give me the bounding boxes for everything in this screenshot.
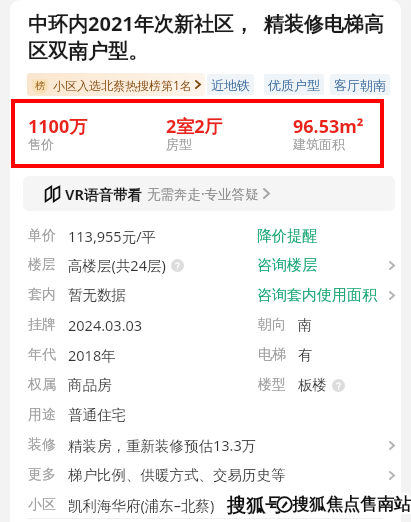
staticText: 电梯 [258,346,286,364]
staticText: 高楼层(共24层) [68,255,166,275]
staticText: 小区入选北蔡热搜榜第1名 [53,77,192,93]
staticText: 楼型 [258,376,286,394]
button[interactable]: 更多 [0,460,411,490]
staticText: 96.53m² [293,114,364,139]
staticText: 咨询楼层 [257,256,317,275]
staticText: 权属 [28,376,56,394]
staticText: 1100万 [28,114,88,139]
staticText: 朝向 [258,316,286,334]
button[interactable]: 客厅朝南 [330,74,390,95]
button[interactable]: 近地铁 [207,74,254,95]
button[interactable]: 套内 [0,280,411,310]
staticText: 搜狐焦点售南站 [292,496,411,517]
button[interactable]: 榜 [27,73,205,96]
staticText: 搜狐号 [225,492,282,516]
staticText: 搜狐号 [229,496,286,520]
staticText: 113,955元/平 [68,226,157,246]
staticText: 单价 [28,227,56,245]
staticText: 挂牌 [28,316,56,334]
button[interactable]: 挂牌 [0,310,411,340]
staticText: 搜狐焦点售南站 [292,492,411,513]
staticText: 更多 [28,466,56,484]
staticText: 搜狐焦点售南站 [294,492,411,513]
staticText: 2室2厅 [166,114,223,139]
staticText: 梯户比例、供暖方式、交易历史等 [68,466,286,484]
staticText: 无需奔走·专业答疑 [147,185,259,203]
staticText: 2018年 [68,345,116,365]
staticText: 搜狐号 [225,496,282,520]
staticText: 近地铁 [211,77,250,93]
staticText: 搜狐号 [225,494,282,518]
staticText: 咨询套内使用面积 [257,286,377,305]
staticText: 精装房，重新装修预估13.3万 [68,435,257,455]
staticText: 商品房 [68,376,112,394]
staticText: 房型 [166,136,192,152]
staticText: 搜狐焦点售南站 [290,496,409,517]
button[interactable]: 单价 [0,221,411,251]
button[interactable]: 小区 [0,490,411,520]
button[interactable]: 年代 [0,340,411,370]
staticText: 搜狐号 [229,492,286,516]
button[interactable]: 用途 [0,400,411,430]
staticText: 用途 [28,406,56,424]
staticText: 中环内2021年次新社区， 精装修电梯高区双南户型。 [28,10,394,64]
staticText: 搜狐号 [227,494,284,518]
staticText: 有 [298,346,313,364]
button[interactable]: 优质户型 [264,74,324,95]
staticText: 客厅朝南 [334,77,386,93]
staticText: 搜狐号 [227,492,284,516]
button[interactable]: VR语音带看 [23,176,395,211]
button[interactable]: 装修 [0,430,411,460]
staticText: 优质户型 [268,77,320,93]
staticText: 搜狐焦点售南站 [294,496,411,517]
staticText: 降价提醒 [257,227,317,246]
staticText: 板楼 [298,376,327,394]
staticText: 搜狐号 [227,496,284,520]
staticText: 搜狐号 [229,494,286,518]
staticText: 装修 [28,436,56,454]
staticText: 2024.03.03 [68,315,143,335]
staticText: 搜狐焦点售南站 [294,494,411,515]
staticText: 搜狐焦点售南站 [290,492,409,513]
staticText: 售价 [28,136,54,152]
staticText: 南 [298,316,313,334]
button[interactable]: 权属 [0,370,411,400]
staticText: 暂无数据 [68,286,126,304]
button[interactable]: 楼层 [0,250,411,280]
staticText: 年代 [28,346,56,364]
staticText: 楼层 [28,256,56,274]
staticText: 榜 [35,79,45,92]
staticText: 搜狐焦点售南站 [290,494,409,515]
staticText: 普通住宅 [68,406,126,424]
staticText: 套内 [28,286,56,304]
staticText: 小区 [28,496,56,514]
staticText: 搜狐焦点售南站 [292,494,411,515]
staticText: VR语音带看 [65,184,142,204]
staticText: 凯利海华府(浦东–北蔡) [68,495,215,515]
staticText: 建筑面积 [293,136,345,152]
